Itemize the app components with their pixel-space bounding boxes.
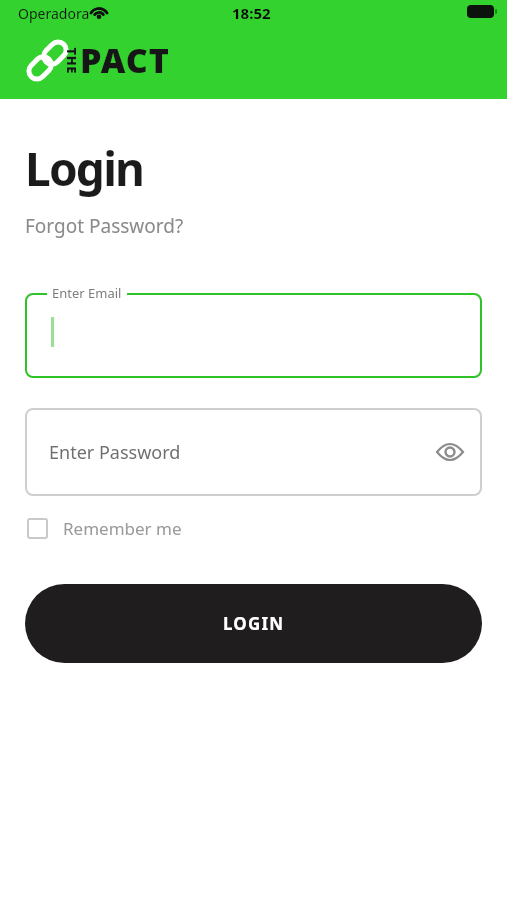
staticText: Forgot Password?: [25, 213, 184, 239]
staticText: 18:52: [232, 3, 271, 23]
staticText: Remember me: [63, 517, 182, 540]
button[interactable]: Enter Password: [25, 408, 482, 496]
button[interactable]: Remember me: [27, 517, 182, 540]
staticText: THE: [62, 47, 80, 74]
staticText: Enter Email: [52, 284, 122, 302]
button[interactable]: LOGIN: [25, 584, 482, 663]
staticText: PACT: [80, 37, 170, 83]
staticText: Operadora: [18, 4, 90, 23]
button[interactable]: [25, 293, 482, 378]
staticText: LOGIN: [223, 612, 285, 635]
staticText: Enter Password: [49, 440, 181, 465]
staticText: Login: [25, 137, 144, 200]
